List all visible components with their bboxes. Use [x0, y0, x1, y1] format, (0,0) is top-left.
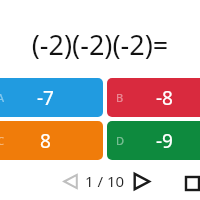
staticText: D — [116, 133, 125, 148]
staticText: B — [116, 90, 124, 105]
button[interactable]: More — [181, 172, 200, 194]
button[interactable]: D — [107, 121, 200, 160]
staticText: (-2)(-2)(-2)= — [0, 26, 200, 63]
staticText: -9 — [156, 128, 173, 154]
button[interactable]: A — [0, 78, 103, 117]
staticText: C — [0, 133, 4, 148]
button[interactable]: B — [107, 78, 200, 117]
button[interactable]: C — [0, 121, 103, 160]
button[interactable]: Next question — [128, 168, 154, 194]
staticText: -7 — [37, 85, 54, 111]
staticText: 8 — [40, 128, 51, 154]
staticText: A — [0, 90, 5, 105]
staticText: -8 — [156, 85, 173, 111]
staticText: 1 / 10 — [85, 171, 125, 191]
button[interactable]: Previous question — [57, 168, 83, 194]
